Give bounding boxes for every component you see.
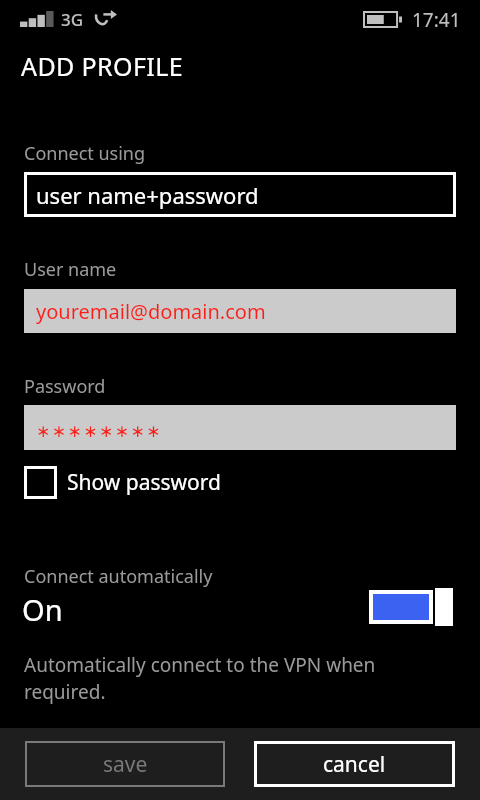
staticText: youremail@domain.com	[36, 298, 266, 325]
staticText: user name+password	[36, 180, 259, 210]
staticText: ∗∗∗∗∗∗∗∗	[36, 421, 162, 441]
staticText: cancel	[323, 750, 386, 779]
button[interactable]: cancel	[254, 741, 455, 787]
staticText: On	[22, 590, 63, 629]
button[interactable]: Connect automatically toggle	[369, 588, 453, 626]
staticText: Connect using	[24, 141, 146, 166]
button[interactable]: youremail@domain.com	[24, 289, 456, 333]
staticText: ADD PROFILE	[21, 49, 184, 83]
button[interactable]: user name+password	[24, 172, 456, 217]
staticText: 17:41	[412, 7, 461, 33]
button[interactable]: save	[25, 741, 225, 787]
button[interactable]: ∗∗∗∗∗∗∗∗	[24, 405, 456, 450]
staticText: Password	[24, 374, 106, 399]
staticText: Show password	[67, 468, 221, 497]
staticText: save	[103, 750, 148, 779]
staticText: Connect automatically	[24, 564, 213, 589]
button[interactable]: Show password	[24, 462, 221, 502]
staticText: Automatically connect to the VPN when re…	[24, 652, 424, 705]
staticText: 3G	[61, 8, 84, 31]
staticText: User name	[24, 257, 117, 282]
